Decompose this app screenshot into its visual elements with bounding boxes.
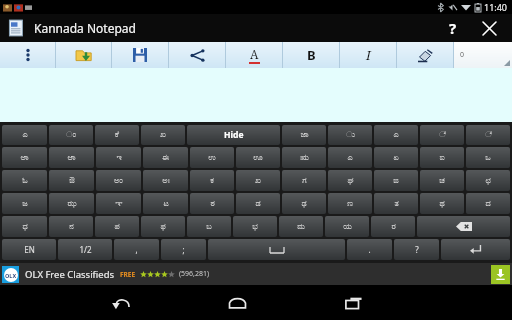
button[interactable]: ಧ <box>2 216 47 237</box>
button[interactable]: ೆ <box>420 125 464 145</box>
staticText: ಫ <box>160 223 166 231</box>
button[interactable]: HIDE <box>187 125 280 145</box>
button[interactable]: ು <box>328 125 372 145</box>
staticText: A <box>250 46 259 62</box>
button[interactable]: ಓ <box>2 170 47 191</box>
button[interactable]: EN <box>2 239 56 260</box>
button[interactable]: ತ <box>374 193 418 214</box>
button[interactable]: Help <box>436 14 470 42</box>
button[interactable]: SPACE <box>208 239 345 260</box>
button[interactable]: . <box>347 239 392 260</box>
button[interactable]: Recent apps <box>331 285 377 320</box>
button[interactable]: ಎ <box>328 147 372 168</box>
button[interactable]: ಢ <box>282 193 326 214</box>
staticText: ು <box>346 131 355 139</box>
button[interactable]: ಠ <box>190 193 234 214</box>
staticText: ಅಂ <box>114 177 123 185</box>
button[interactable]: ಒ <box>466 147 510 168</box>
staticText: ಊ <box>253 154 263 162</box>
button[interactable]: ; <box>161 239 206 260</box>
staticText: Hide <box>224 129 244 141</box>
button[interactable]: ಈ <box>143 147 188 168</box>
button[interactable]: ಗ <box>282 170 326 191</box>
button[interactable]: ಛ <box>466 170 510 191</box>
button[interactable]: ಙ <box>374 170 418 191</box>
button[interactable]: ಕ <box>190 170 234 191</box>
button[interactable]: ೆ <box>466 125 510 145</box>
button[interactable]: Close <box>470 14 508 42</box>
button[interactable]: Home <box>214 285 260 320</box>
button[interactable]: OLX <box>0 263 512 285</box>
button[interactable]: ? <box>394 239 439 260</box>
staticText: ಜಾ <box>300 131 309 139</box>
button[interactable]: ಎ <box>2 125 47 145</box>
staticText: . <box>368 244 371 255</box>
button[interactable]: BKSP <box>417 216 510 237</box>
staticText: ಎ <box>393 131 399 139</box>
button[interactable]: ಥ <box>420 193 464 214</box>
staticText: (596,281) <box>179 269 210 279</box>
button[interactable]: 1/2 <box>58 239 112 260</box>
button[interactable]: ENTER <box>441 239 510 260</box>
staticText: ೆ <box>485 131 492 139</box>
button[interactable]: ಞ <box>96 193 141 214</box>
staticText: ಙ <box>393 177 399 185</box>
button[interactable]: Bold <box>283 42 339 68</box>
button[interactable]: ಭ <box>233 216 277 237</box>
button[interactable]: ರ <box>371 216 415 237</box>
staticText: ಗ <box>302 177 307 185</box>
button[interactable]: ಜಾ <box>282 125 326 145</box>
staticText: 1/2 <box>79 244 92 255</box>
button[interactable]: Back <box>97 285 143 320</box>
button[interactable]: , <box>114 239 159 260</box>
staticText: ತ <box>394 200 399 208</box>
button[interactable]: ಅಂ <box>96 170 141 191</box>
button[interactable]: ಡ <box>236 193 280 214</box>
button[interactable]: ಝ <box>49 193 94 214</box>
button[interactable]: ಕೆ <box>95 125 139 145</box>
button[interactable]: ಆಾ <box>49 147 94 168</box>
button[interactable]: ದ <box>466 193 510 214</box>
button[interactable]: ಣ <box>328 193 372 214</box>
staticText: ಆಾ <box>67 154 76 162</box>
button[interactable]: ಎ <box>374 125 418 145</box>
button[interactable]: ಔ <box>49 170 94 191</box>
button[interactable]: ಉ <box>190 147 234 168</box>
button[interactable]: ಂ <box>49 125 93 145</box>
button[interactable]: ಟ <box>143 193 188 214</box>
button[interactable]: ಚ <box>420 170 464 191</box>
staticText: ಇ <box>116 154 122 162</box>
button[interactable]: ಜ <box>2 193 47 214</box>
button[interactable]: ಋ <box>282 147 326 168</box>
staticText: B <box>307 46 316 64</box>
button[interactable]: 0 <box>454 42 512 68</box>
button[interactable]: ಖ <box>141 125 185 145</box>
button[interactable]: ಅಃ <box>143 170 188 191</box>
button[interactable]: ಪ <box>95 216 139 237</box>
button[interactable]: ಐ <box>420 147 464 168</box>
button[interactable]: Font <box>226 42 282 68</box>
button[interactable]: ಮ <box>279 216 323 237</box>
staticText: ಏ <box>393 154 399 162</box>
button[interactable]: Share <box>169 42 225 68</box>
button[interactable]: ಊ <box>236 147 280 168</box>
staticText: ಔ <box>69 177 75 185</box>
button[interactable]: ಫ <box>141 216 185 237</box>
button[interactable]: ನ <box>49 216 93 237</box>
button[interactable]: ಖ <box>236 170 280 191</box>
button[interactable]: More options <box>0 42 55 68</box>
button[interactable]: ಅಾ <box>2 147 47 168</box>
button[interactable]: ಬ <box>187 216 231 237</box>
button[interactable]: Open <box>56 42 111 68</box>
button[interactable]: ಘ <box>328 170 372 191</box>
button[interactable]: ಏ <box>374 147 418 168</box>
staticText: 0 <box>460 50 465 60</box>
button[interactable]: Colour <box>397 42 453 68</box>
button[interactable]: ಯ <box>325 216 369 237</box>
button[interactable]: ಇ <box>96 147 141 168</box>
staticText: ಈ <box>162 154 169 162</box>
button[interactable]: Install <box>491 265 510 284</box>
button[interactable]: Save <box>112 42 168 68</box>
staticText: ಖ <box>255 177 261 185</box>
button[interactable]: Italic <box>340 42 396 68</box>
